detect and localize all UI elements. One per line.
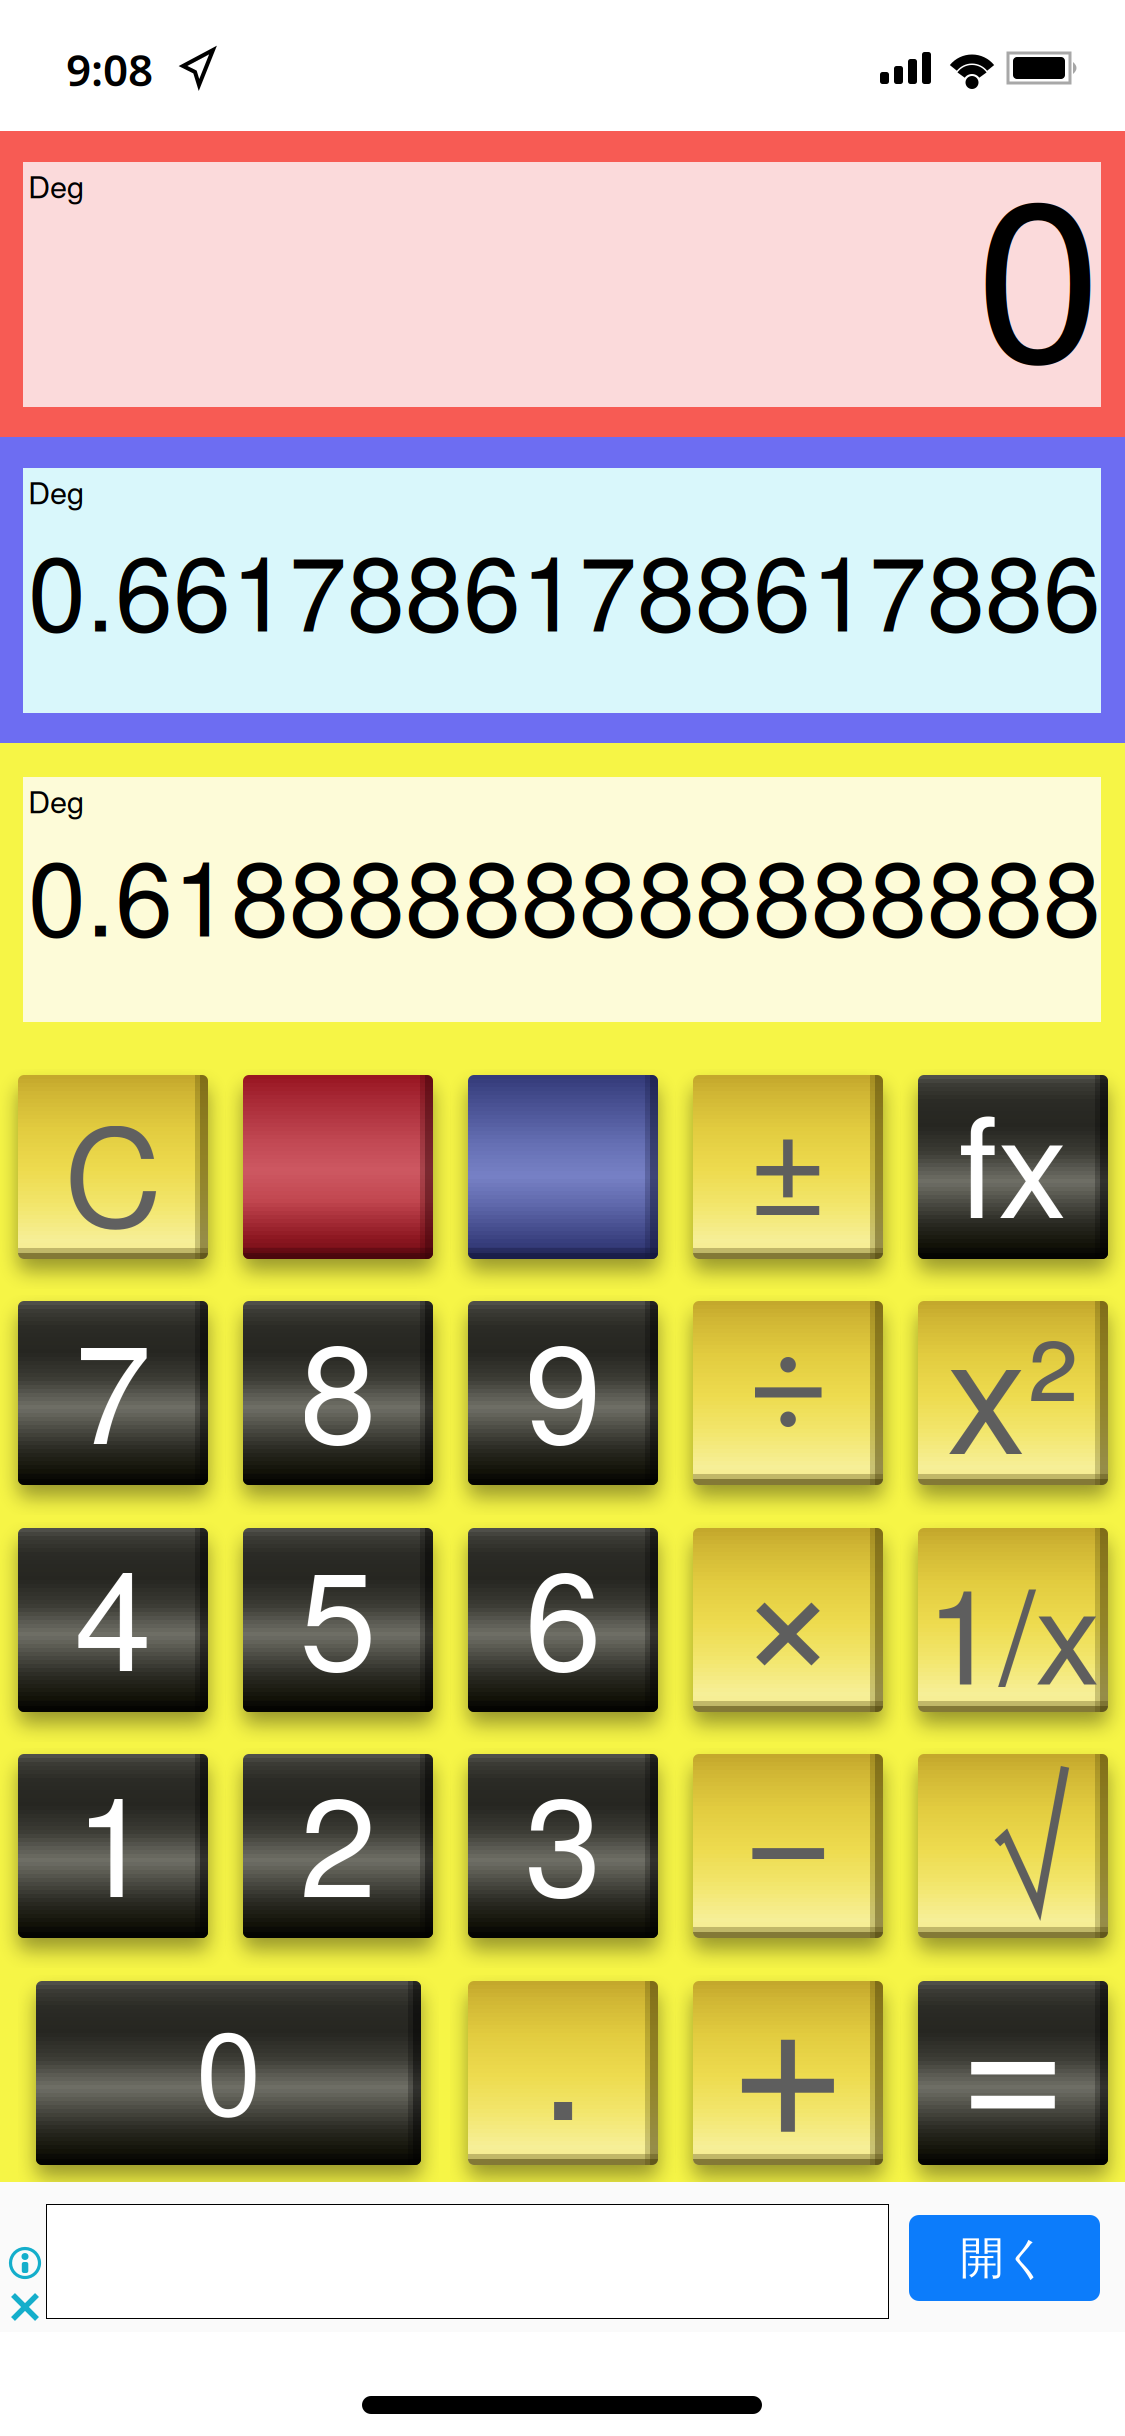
staticText: 1	[74, 1738, 151, 1936]
button[interactable]: 3	[468, 1754, 658, 1938]
button[interactable]: 開く	[909, 2215, 1100, 2301]
staticText: 9	[524, 1285, 601, 1483]
button[interactable]: .	[468, 1981, 658, 2165]
staticText: ×	[737, 1477, 839, 1727]
button[interactable]: 4	[18, 1528, 208, 1712]
staticText: 6	[524, 1512, 601, 1710]
button[interactable]	[468, 1075, 658, 1259]
button[interactable]	[8, 2246, 42, 2280]
staticText: x²	[946, 1270, 1079, 1499]
staticText: 0	[976, 104, 1101, 427]
staticText: 9:08	[66, 40, 153, 98]
button[interactable]	[243, 1075, 433, 1259]
staticText: ÷	[744, 1258, 831, 1472]
staticText: Deg	[28, 163, 84, 207]
staticText: 2	[299, 1738, 376, 1936]
staticText: .	[539, 1921, 587, 2169]
staticText: +	[728, 1901, 848, 2195]
staticText: 0	[196, 1981, 261, 2149]
button[interactable]: +	[693, 1981, 883, 2165]
staticText: 1/x	[926, 1534, 1100, 1721]
button[interactable]: 8	[243, 1301, 433, 1485]
button[interactable]: ×	[693, 1528, 883, 1712]
button[interactable]: 1	[18, 1754, 208, 1938]
button[interactable]: √	[918, 1754, 1108, 1938]
staticText: 3	[524, 1738, 601, 1936]
staticText: 5	[299, 1512, 376, 1710]
staticText: ±	[747, 1055, 829, 1255]
staticText: 開く	[960, 2231, 1049, 2285]
staticText: =	[958, 1917, 1067, 2185]
staticText: 7	[74, 1285, 151, 1483]
button[interactable]: ÷	[693, 1301, 883, 1485]
button[interactable]: C	[18, 1075, 208, 1259]
button[interactable]	[9, 2291, 41, 2323]
staticText: √	[986, 1722, 1076, 1960]
button[interactable]: x²	[918, 1301, 1108, 1485]
staticText: C	[64, 1072, 162, 1266]
staticText: −	[741, 1710, 834, 1939]
staticText: 0.66178861788617886	[28, 512, 1101, 661]
staticText: 4	[74, 1512, 151, 1710]
button[interactable]: 6	[468, 1528, 658, 1712]
button[interactable]: 7	[18, 1301, 208, 1485]
button[interactable]: 2	[243, 1754, 433, 1938]
staticText: Deg	[28, 778, 84, 822]
button[interactable]: 9	[468, 1301, 658, 1485]
staticText: fx	[958, 1058, 1067, 1258]
staticText: 8	[299, 1285, 376, 1483]
button[interactable]: ±	[693, 1075, 883, 1259]
button[interactable]: 5	[243, 1528, 433, 1712]
button[interactable]: =	[918, 1981, 1108, 2165]
button[interactable]: −	[693, 1754, 883, 1938]
staticText: Deg	[28, 469, 84, 513]
button[interactable]: 1/x	[918, 1528, 1108, 1712]
button[interactable]: 0	[36, 1981, 421, 2165]
button[interactable]: fx	[918, 1075, 1108, 1259]
staticText: 0.61888888888888888	[28, 817, 1101, 966]
